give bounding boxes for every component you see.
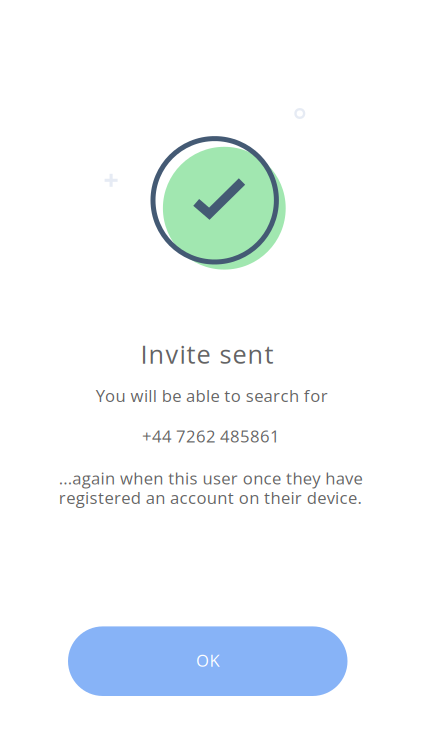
staticText: ...again when this user once they have (59, 467, 363, 489)
staticText: +44 7262 485861 (142, 425, 280, 447)
staticText: You will be able to search for (96, 384, 328, 407)
button[interactable]: OK (68, 626, 347, 696)
staticText: OK (196, 649, 219, 672)
staticText: Invite sent (140, 337, 273, 371)
staticText: registered an account on their device. (59, 486, 361, 509)
